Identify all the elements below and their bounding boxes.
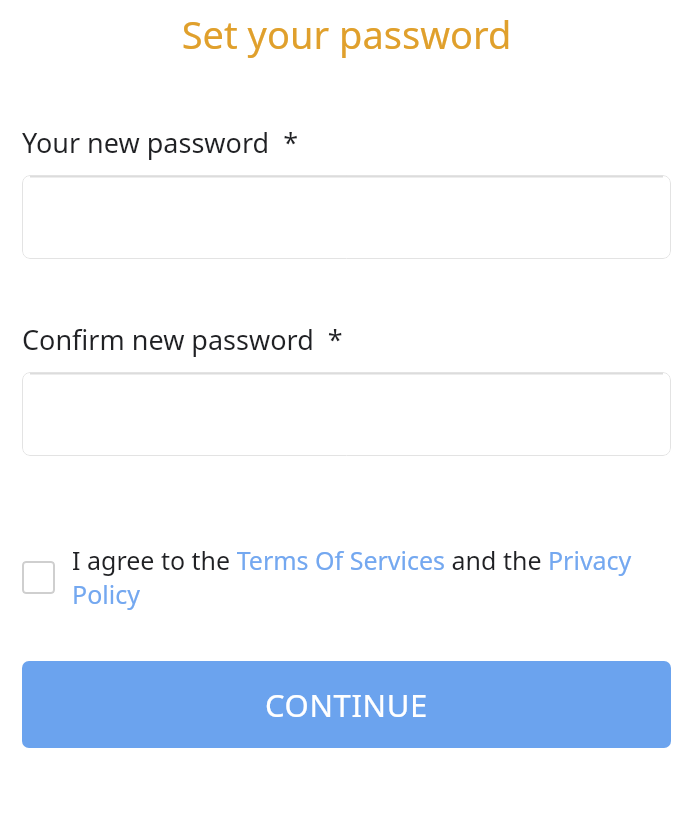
staticText: CONTINUE [265, 684, 428, 726]
staticText: Set your password [0, 8, 693, 60]
button[interactable]: CONTINUE [22, 661, 671, 748]
button[interactable] [22, 175, 671, 259]
button[interactable]: I agree to the Terms Of Services and the… [72, 543, 671, 611]
button[interactable] [22, 372, 671, 456]
staticText: Confirm new password * [22, 321, 343, 358]
staticText: Your new password * [22, 124, 299, 161]
button[interactable]: I agree to the terms checkbox [22, 561, 55, 594]
